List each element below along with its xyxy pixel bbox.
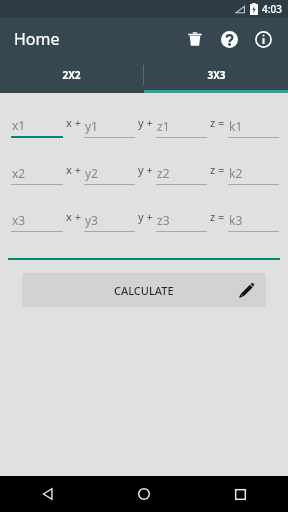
button[interactable]: 3X3 — [144, 60, 288, 90]
staticText: z = — [210, 162, 225, 177]
staticText: y + — [138, 115, 153, 130]
staticText: x + — [66, 209, 81, 224]
button[interactable]: z2 — [156, 153, 207, 185]
staticText: z = — [210, 209, 225, 224]
staticText: y2 — [85, 165, 98, 181]
staticText: x2 — [12, 165, 26, 181]
staticText: 4:03 — [262, 2, 282, 16]
staticText: y1 — [85, 118, 98, 134]
staticText: y + — [138, 209, 153, 224]
button[interactable]: Back — [0, 476, 96, 512]
staticText: 3X3 — [207, 68, 226, 82]
staticText: k1 — [229, 118, 243, 134]
staticText: k2 — [229, 165, 243, 181]
button[interactable]: CALCULATE — [22, 273, 266, 307]
button[interactable]: x3 — [11, 200, 63, 232]
staticText: x + — [66, 162, 81, 177]
button[interactable]: z3 — [156, 200, 207, 232]
staticText: 2X2 — [62, 68, 81, 82]
staticText: z = — [210, 115, 225, 130]
other: Edit — [236, 280, 256, 300]
button[interactable]: k1 — [228, 106, 279, 138]
staticText: x + — [66, 115, 81, 130]
button[interactable]: z1 — [156, 106, 207, 138]
button[interactable]: Home — [96, 476, 192, 512]
button[interactable]: 2X2 — [0, 60, 143, 90]
staticText: CALCULATE — [114, 283, 174, 298]
staticText: y + — [138, 162, 153, 177]
staticText: y3 — [85, 212, 98, 228]
staticText: z1 — [157, 118, 170, 134]
staticText: Home — [14, 28, 60, 50]
button[interactable]: Recent apps — [192, 476, 288, 512]
button[interactable]: y1 — [84, 106, 135, 138]
button[interactable]: k2 — [228, 153, 279, 185]
staticText: x1 — [12, 117, 26, 133]
button[interactable]: y2 — [84, 153, 135, 185]
staticText: k3 — [229, 212, 243, 228]
button[interactable]: Help — [212, 22, 246, 56]
staticText: z2 — [157, 165, 170, 181]
button[interactable]: Delete — [178, 22, 212, 56]
staticText: z3 — [157, 212, 170, 228]
button[interactable]: k3 — [228, 200, 279, 232]
button[interactable]: x1 — [11, 106, 63, 138]
button[interactable]: y3 — [84, 200, 135, 232]
staticText: x3 — [12, 212, 26, 228]
button[interactable]: x2 — [11, 153, 63, 185]
button[interactable]: Info — [246, 22, 280, 56]
